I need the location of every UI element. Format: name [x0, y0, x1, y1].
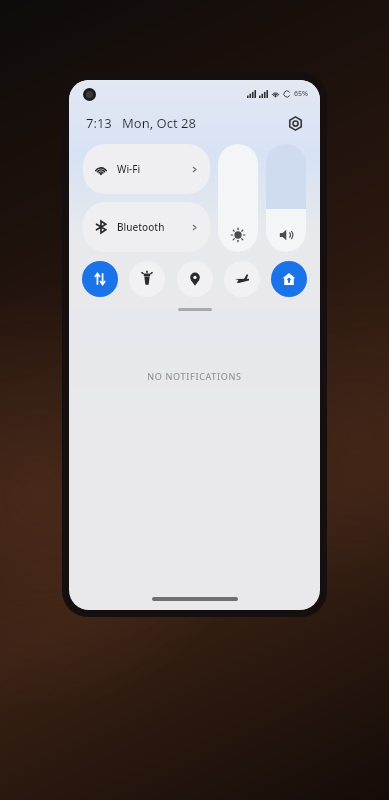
button[interactable]: Volume — [266, 144, 306, 252]
button[interactable]: Bluetooth — [83, 202, 210, 252]
staticText: 7:13 — [86, 114, 112, 132]
staticText: 65% — [294, 89, 308, 99]
button[interactable]: Location — [177, 261, 213, 297]
staticText: Wi-Fi — [117, 162, 141, 176]
button[interactable]: Settings — [284, 112, 306, 134]
button[interactable] — [178, 308, 212, 311]
button[interactable]: Wi-Fi — [83, 144, 210, 194]
staticText: NO NOTIFICATIONS — [147, 370, 242, 382]
staticText: Bluetooth — [117, 220, 165, 234]
button[interactable]: Brightness — [218, 144, 258, 252]
button[interactable]: Flashlight — [129, 261, 165, 297]
button[interactable]: Mobile data — [82, 261, 118, 297]
button[interactable]: Airplane mode — [224, 261, 260, 297]
staticText: Mon, Oct 28 — [122, 114, 196, 132]
button[interactable]: Device controls — [271, 261, 307, 297]
